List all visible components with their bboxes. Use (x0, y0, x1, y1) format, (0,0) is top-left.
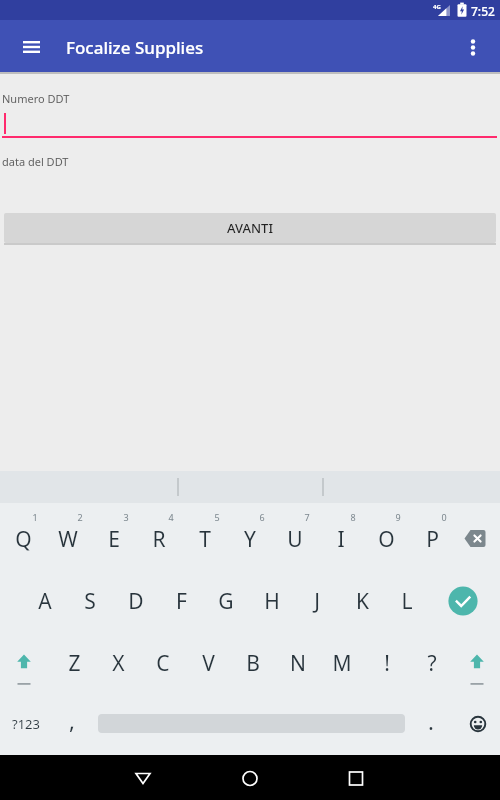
staticText: 8 (350, 511, 356, 523)
staticText: ?123 (12, 715, 40, 733)
staticText: data del DDT (2, 154, 69, 169)
staticText: I (337, 525, 345, 554)
staticText: Focalize Supplies (66, 36, 204, 59)
staticText: E (108, 525, 120, 554)
staticText: 4 (168, 511, 174, 523)
staticText: J (314, 587, 320, 616)
staticText: 1 (32, 511, 38, 523)
staticText: L (401, 587, 413, 616)
staticText: 3 (123, 511, 129, 523)
staticText: H (264, 587, 280, 616)
staticText: AVANTI (227, 219, 273, 237)
staticText: F (176, 587, 187, 616)
staticText: 5 (214, 511, 220, 523)
staticText: T (199, 525, 211, 554)
staticText: 0 (441, 511, 447, 523)
staticText: U (287, 525, 303, 554)
staticText: 7 (304, 511, 310, 523)
staticText: Numero DDT (2, 91, 70, 106)
staticText: S (84, 587, 96, 616)
staticText: O (378, 525, 395, 554)
staticText: G (218, 587, 234, 616)
staticText: 4G (433, 3, 441, 11)
staticText: C (156, 649, 170, 678)
staticText: V (202, 649, 215, 678)
staticText: , (69, 705, 75, 735)
staticText: W (58, 525, 78, 554)
staticText: B (246, 649, 260, 678)
staticText: . (428, 706, 434, 736)
staticText: M (332, 649, 352, 678)
staticText: D (128, 587, 144, 616)
staticText: Q (15, 525, 32, 554)
staticText: N (290, 649, 306, 678)
staticText: Z (68, 649, 81, 678)
staticText: 7:52 (471, 3, 495, 19)
staticText: 2 (77, 511, 83, 523)
staticText: 9 (395, 511, 401, 523)
staticText: ? (427, 649, 437, 678)
staticText: Y (244, 525, 256, 554)
staticText: 6 (259, 511, 265, 523)
staticText: ! (384, 649, 390, 678)
staticText: R (152, 525, 166, 554)
staticText: K (356, 587, 369, 616)
staticText: A (38, 587, 52, 616)
staticText: P (426, 525, 439, 554)
staticText: X (112, 649, 125, 678)
